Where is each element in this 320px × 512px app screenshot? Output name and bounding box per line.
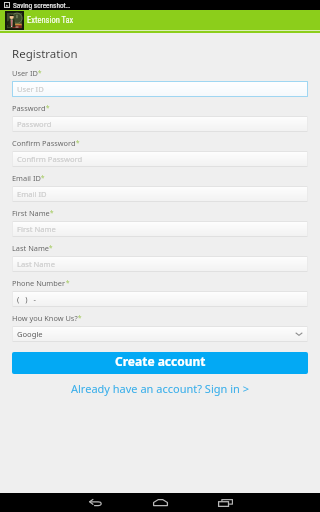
staticText: Password <box>12 103 46 113</box>
staticText: Confirm Password <box>17 154 83 164</box>
button[interactable]: Google <box>12 326 308 342</box>
staticText: Already have an account? Sign in > <box>71 381 249 396</box>
staticText: Phone Number <box>12 278 66 288</box>
staticText: Email ID <box>17 189 47 199</box>
staticText: * <box>76 138 80 146</box>
button[interactable]: App icon <box>5 11 24 30</box>
staticText: * <box>50 208 54 216</box>
staticText: Registration <box>12 46 78 62</box>
staticText: Last Name <box>12 243 49 253</box>
staticText: * <box>38 68 42 76</box>
staticText: Google <box>17 329 43 339</box>
staticText: * <box>49 243 53 251</box>
staticText: Extension Tax <box>27 15 74 25</box>
button[interactable]: User ID <box>12 81 308 97</box>
staticText: * <box>41 173 45 181</box>
staticText: ( ) - <box>17 294 36 304</box>
staticText: Saving screenshot… <box>13 1 71 10</box>
staticText: Confirm Password <box>12 138 76 148</box>
staticText: Password <box>17 119 52 129</box>
button[interactable]: Password <box>12 116 308 132</box>
staticText: Last Name <box>17 259 56 269</box>
button[interactable]: Back <box>78 493 112 512</box>
staticText: How you Know Us? <box>12 313 78 323</box>
staticText: Create account <box>115 353 206 369</box>
staticText: * <box>66 278 70 286</box>
button[interactable]: Already have an account? Sign in > <box>12 381 308 396</box>
staticText: User ID <box>17 84 44 94</box>
staticText: * <box>78 313 82 321</box>
button[interactable]: Confirm Password <box>12 151 308 167</box>
staticText: First Name <box>17 224 56 234</box>
button[interactable]: First Name <box>12 221 308 237</box>
button[interactable]: ( ) - <box>12 291 308 307</box>
button[interactable]: Last Name <box>12 256 308 272</box>
button[interactable]: Recent apps <box>208 493 242 512</box>
button[interactable]: Home <box>143 493 177 512</box>
button[interactable]: Email ID <box>12 186 308 202</box>
staticText: First Name <box>12 208 50 218</box>
staticText: Email ID <box>12 173 41 183</box>
staticText: * <box>46 103 50 111</box>
staticText: User ID <box>12 68 38 78</box>
button[interactable]: Create account <box>12 352 308 374</box>
